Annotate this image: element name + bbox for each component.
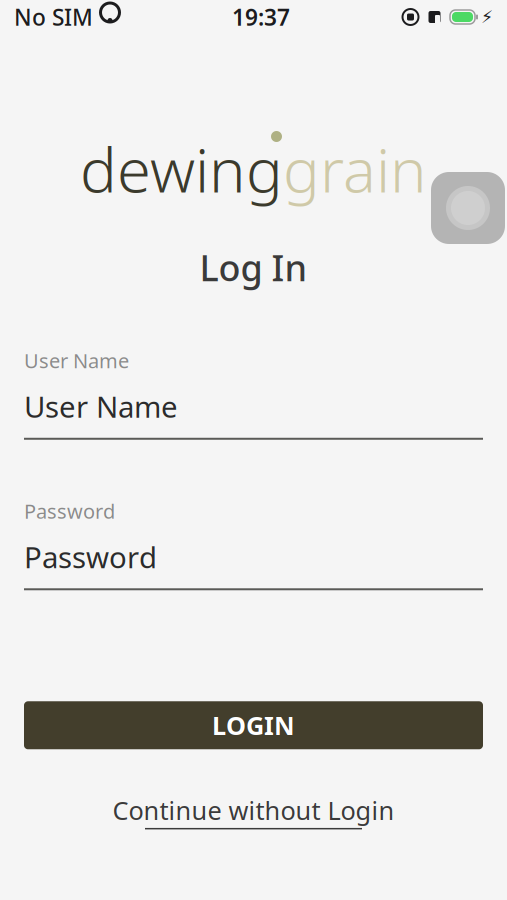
- button[interactable]: Continue without Login: [92, 785, 414, 837]
- staticText: Password: [24, 537, 157, 576]
- button[interactable]: LOGIN: [24, 701, 483, 749]
- staticText: LOGIN: [212, 708, 295, 742]
- staticText: ⚡︎: [481, 7, 493, 27]
- staticText: Password: [24, 498, 115, 524]
- staticText: Continue without Login: [112, 793, 394, 827]
- staticText: 19:37: [232, 2, 290, 32]
- staticText: User Name: [24, 347, 129, 374]
- staticText: User Name: [24, 387, 178, 426]
- staticText: Log In: [199, 243, 307, 291]
- staticText: grain: [283, 128, 427, 209]
- button[interactable]: AssistiveTouch: [431, 172, 505, 244]
- staticText: No SIM: [14, 2, 93, 32]
- staticText: dewing: [80, 128, 283, 209]
